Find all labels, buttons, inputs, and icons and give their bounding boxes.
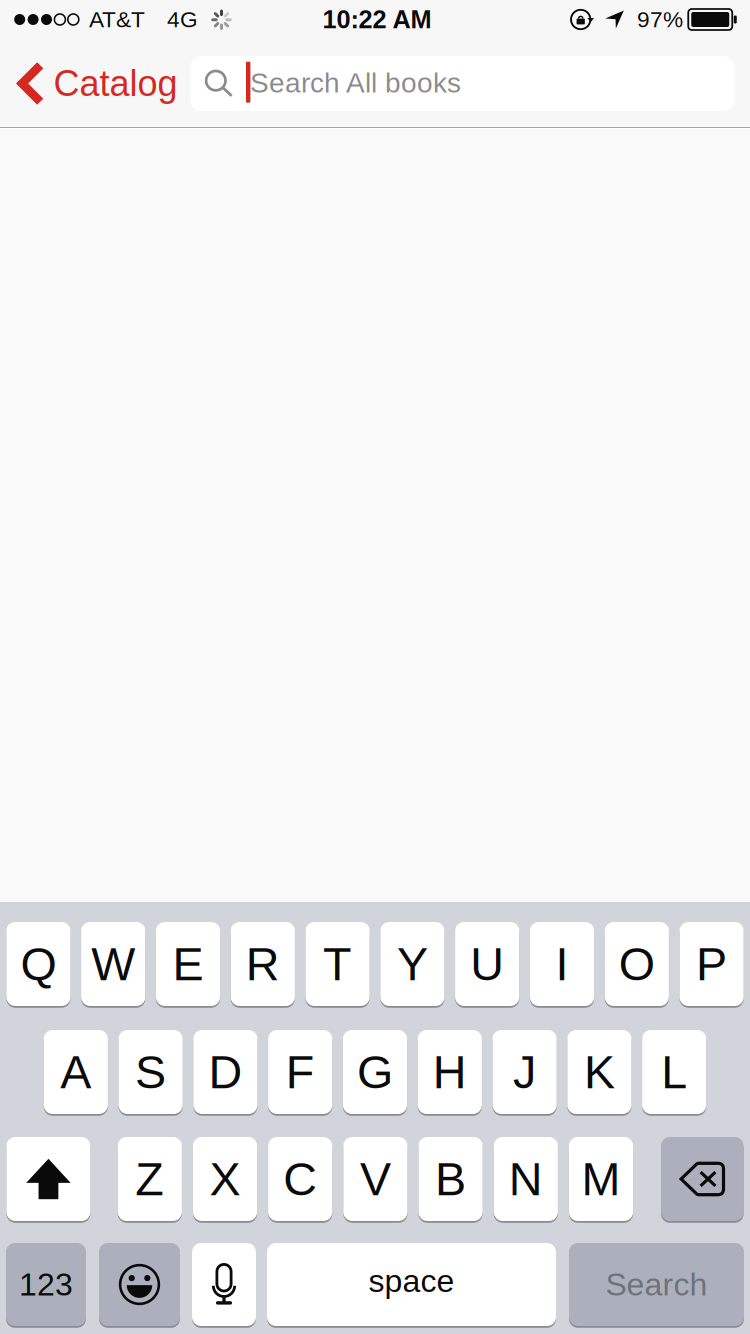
button[interactable]: U: [455, 922, 519, 1006]
staticText: 97%: [637, 7, 683, 32]
staticText: B: [435, 1153, 466, 1205]
staticText: N: [509, 1153, 543, 1205]
button[interactable]: Catalog: [18, 40, 184, 127]
staticText: F: [286, 1046, 315, 1098]
button[interactable]: Search All books: [190, 56, 734, 111]
button[interactable]: M: [569, 1137, 633, 1221]
staticText: AT&T: [89, 7, 145, 32]
staticText: V: [360, 1153, 391, 1205]
button[interactable]: Dictation: [192, 1243, 256, 1326]
staticText: P: [696, 938, 727, 990]
staticText: G: [357, 1046, 393, 1098]
button[interactable]: C: [268, 1137, 332, 1221]
button[interactable]: J: [492, 1030, 557, 1114]
button[interactable]: T: [305, 922, 370, 1006]
button[interactable]: Delete: [661, 1137, 744, 1221]
staticText: H: [433, 1046, 467, 1098]
button[interactable]: S: [118, 1030, 183, 1114]
button[interactable]: Q: [6, 922, 70, 1006]
staticText: T: [323, 938, 352, 990]
staticText: Search: [605, 1267, 707, 1302]
button[interactable]: I: [530, 922, 594, 1006]
staticText: Y: [397, 938, 428, 990]
staticText: J: [513, 1046, 536, 1098]
staticText: space: [368, 1263, 454, 1299]
button[interactable]: L: [642, 1030, 706, 1114]
button[interactable]: Search: [569, 1243, 744, 1326]
button[interactable]: Y: [380, 922, 444, 1006]
button[interactable]: H: [418, 1030, 482, 1114]
staticText: E: [172, 938, 203, 990]
staticText: U: [470, 938, 504, 990]
button[interactable]: W: [81, 922, 145, 1006]
staticText: W: [91, 938, 135, 990]
button[interactable]: N: [494, 1137, 558, 1221]
button[interactable]: V: [343, 1137, 407, 1221]
staticText: R: [246, 938, 280, 990]
button[interactable]: B: [418, 1137, 483, 1221]
button[interactable]: K: [567, 1030, 631, 1114]
staticText: C: [283, 1153, 317, 1205]
button[interactable]: Emoji: [99, 1243, 180, 1326]
staticText: 10:22 AM: [322, 5, 431, 34]
button[interactable]: Shift: [6, 1137, 90, 1221]
staticText: M: [581, 1153, 620, 1205]
button[interactable]: E: [156, 922, 220, 1006]
staticText: 123: [19, 1267, 73, 1302]
button[interactable]: G: [343, 1030, 407, 1114]
staticText: Search All books: [250, 67, 461, 98]
button[interactable]: Z: [118, 1137, 182, 1221]
button[interactable]: F: [268, 1030, 332, 1114]
button[interactable]: P: [679, 922, 744, 1006]
button[interactable]: X: [193, 1137, 257, 1221]
button[interactable]: space: [267, 1243, 556, 1326]
staticText: 4G: [167, 7, 198, 32]
staticText: X: [209, 1153, 240, 1205]
button[interactable]: 123: [6, 1243, 86, 1326]
staticText: Catalog: [53, 63, 177, 104]
staticText: Q: [20, 938, 56, 990]
staticText: A: [60, 1046, 91, 1098]
staticText: Z: [135, 1153, 164, 1205]
staticText: O: [619, 938, 655, 990]
staticText: K: [584, 1046, 615, 1098]
button[interactable]: D: [193, 1030, 257, 1114]
staticText: L: [661, 1046, 687, 1098]
staticText: S: [135, 1046, 166, 1098]
button[interactable]: A: [44, 1030, 108, 1114]
button[interactable]: R: [231, 922, 295, 1006]
staticText: D: [208, 1046, 242, 1098]
button[interactable]: O: [605, 922, 669, 1006]
staticText: I: [555, 938, 568, 990]
